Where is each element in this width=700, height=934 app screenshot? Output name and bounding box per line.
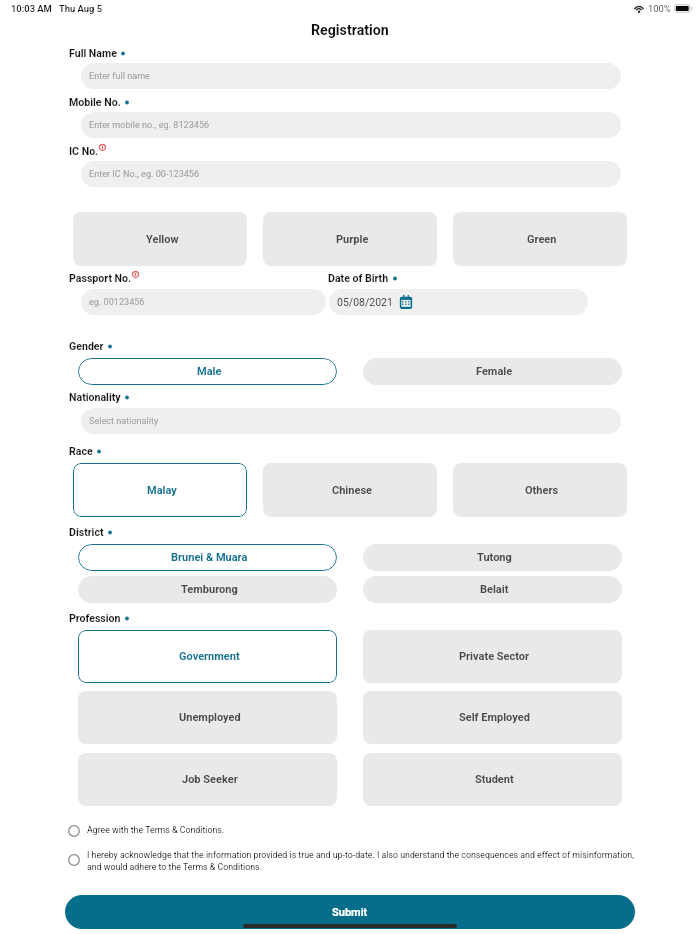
button[interactable]: Self Employed [363, 691, 622, 744]
staticText: Green [527, 233, 557, 246]
staticText: Thu Aug 5 [59, 3, 103, 14]
staticText: Submit [332, 906, 368, 919]
staticText: Enter IC No., eg. 00-123456 [89, 169, 200, 180]
button[interactable]: Brunei & Muara [78, 544, 337, 571]
button[interactable]: Submit [65, 895, 635, 929]
staticText: Mobile No. [69, 96, 121, 108]
button[interactable]: Belait [363, 576, 622, 603]
staticText: Student [475, 773, 514, 786]
button[interactable]: Tutong [363, 544, 622, 571]
button[interactable] [66, 851, 622, 869]
staticText: Self Employed [459, 711, 530, 724]
staticText: Male [197, 365, 222, 378]
button[interactable]: Others [453, 463, 627, 517]
button[interactable]: Enter mobile no., eg. 8123456 [81, 112, 621, 138]
button[interactable]: Temburong [78, 576, 337, 603]
staticText: Date of Birth [328, 272, 389, 284]
button[interactable]: eg. 00123456 [81, 289, 326, 315]
staticText: IC No. [69, 145, 99, 157]
staticText: District [69, 526, 104, 538]
staticText: 100% [648, 3, 671, 14]
staticText: Purple [336, 233, 369, 246]
staticText: Race [69, 445, 93, 457]
staticText: Job Seeker [182, 773, 238, 786]
staticText: Full Name [69, 47, 117, 59]
staticText: Enter mobile no., eg. 8123456 [89, 120, 210, 131]
button[interactable]: Green [453, 212, 627, 266]
staticText: Unemployed [179, 711, 241, 724]
button[interactable]: 05/08/2021 [329, 289, 588, 315]
staticText: Others [525, 484, 559, 497]
button[interactable]: Malay [73, 463, 247, 517]
staticText: Belait [480, 583, 509, 596]
staticText: 10:03 AM [11, 3, 52, 14]
staticText: Temburong [181, 583, 238, 596]
staticText: 05/08/2021 [337, 296, 393, 308]
staticText: Government [179, 650, 240, 663]
button[interactable]: Enter IC No., eg. 00-123456 [81, 161, 621, 187]
staticText: Enter full name [89, 71, 150, 82]
staticText: Tutong [477, 551, 512, 564]
staticText: eg. 00123456 [89, 297, 145, 308]
button[interactable]: Government [78, 630, 337, 683]
staticText: Registration [311, 22, 389, 39]
staticText: Select nationality [89, 416, 159, 427]
staticText: Chinese [332, 484, 372, 497]
button[interactable]: Enter full name [81, 63, 621, 89]
button[interactable]: Unemployed [78, 691, 337, 744]
staticText: Profession [69, 612, 121, 624]
button[interactable]: Select nationality [81, 408, 621, 434]
button[interactable]: Student [363, 753, 622, 806]
button[interactable]: Female [363, 358, 622, 385]
staticText: Gender [69, 340, 104, 352]
staticText: Nationality [69, 391, 121, 403]
staticText: Brunei & Muara [171, 551, 248, 564]
staticText: Malay [147, 484, 177, 497]
button[interactable]: Male [78, 358, 337, 385]
staticText: Passport No. [69, 272, 132, 284]
staticText: Agree with the Terms & Conditions. [87, 825, 225, 835]
button[interactable]: Job Seeker [78, 753, 337, 806]
other: Pick date [399, 294, 413, 310]
button[interactable]: Yellow [73, 212, 247, 266]
staticText: Private Sector [459, 650, 530, 663]
staticText: Yellow [146, 233, 179, 246]
button[interactable]: Private Sector [363, 630, 622, 683]
button[interactable]: Purple [263, 212, 437, 266]
staticText: Female [476, 365, 513, 378]
button[interactable] [66, 822, 622, 840]
button[interactable]: Chinese [263, 463, 437, 517]
staticText: I hereby acknowledge that the informatio… [87, 850, 636, 872]
